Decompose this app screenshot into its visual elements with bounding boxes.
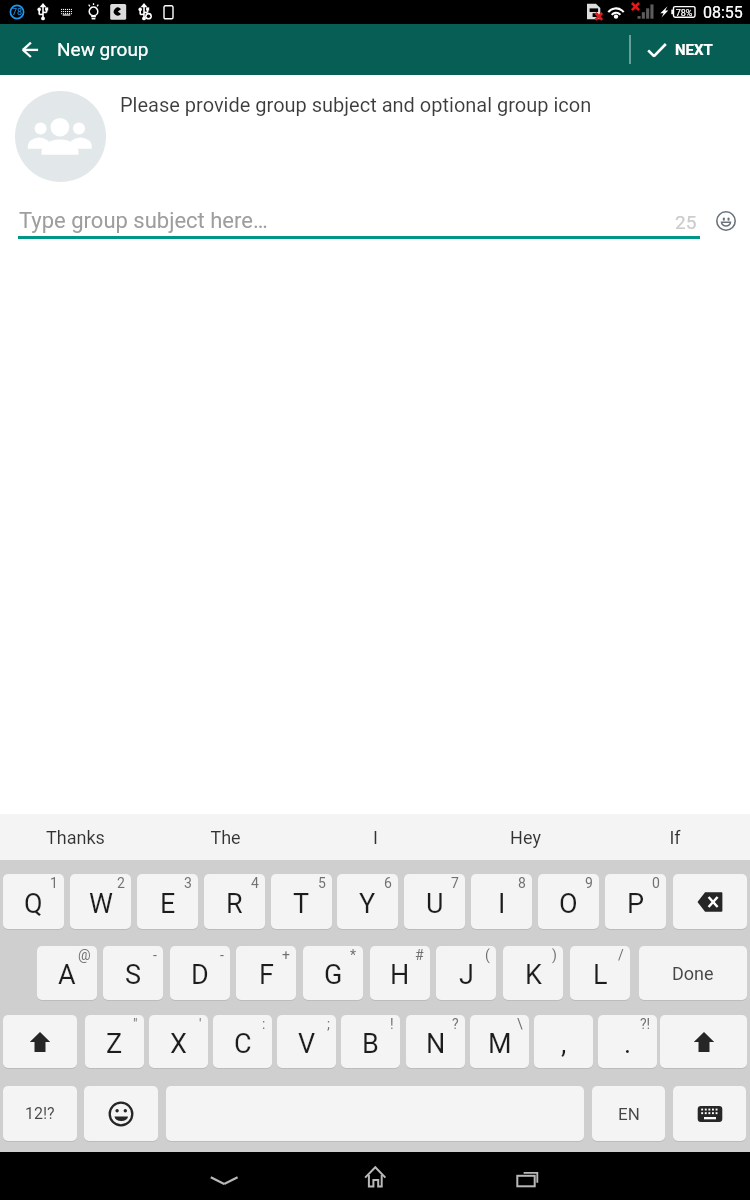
staticText: 6	[384, 875, 392, 891]
staticText: :	[262, 1016, 266, 1032]
staticText: A	[58, 959, 76, 991]
button[interactable]: C	[213, 1015, 272, 1068]
staticText: +	[282, 947, 290, 963]
staticText: N	[426, 1028, 446, 1060]
staticText: Type group subject here…	[19, 208, 268, 234]
staticText: L	[593, 959, 608, 991]
button[interactable]: X	[149, 1015, 208, 1068]
button[interactable]: ,	[534, 1015, 593, 1068]
button[interactable]: F	[236, 946, 296, 1000]
staticText: S	[125, 959, 142, 991]
staticText: P	[627, 888, 645, 920]
staticText: T	[293, 888, 310, 920]
staticText: *	[350, 947, 357, 963]
staticText: K	[525, 959, 542, 991]
staticText: F	[259, 959, 274, 991]
staticText: V	[298, 1028, 316, 1060]
staticText: Thanks	[46, 827, 105, 848]
staticText: 2	[117, 875, 125, 891]
button[interactable]: A	[37, 946, 97, 1000]
staticText: 25	[675, 211, 697, 233]
button[interactable]: G	[303, 946, 363, 1000]
staticText: '	[199, 1016, 202, 1032]
button[interactable]: T	[271, 874, 332, 929]
button[interactable]: EN	[592, 1086, 665, 1141]
button[interactable]: If	[600, 814, 750, 860]
staticText: .	[624, 1028, 632, 1060]
staticText: !	[390, 1016, 394, 1032]
button[interactable]: Z	[85, 1015, 144, 1068]
button[interactable]: Change keyboard	[673, 1086, 746, 1141]
button[interactable]: Add group icon	[15, 91, 106, 182]
staticText: 5	[318, 875, 326, 891]
button[interactable]: Shift	[3, 1015, 77, 1068]
staticText: J	[459, 959, 474, 991]
staticText: E	[160, 888, 176, 920]
button[interactable]: Done	[639, 946, 747, 1000]
staticText: #	[415, 947, 424, 963]
button[interactable]: P	[605, 874, 666, 929]
staticText: Y	[359, 888, 376, 920]
staticText: 12!?	[25, 1104, 55, 1123]
button[interactable]: N	[406, 1015, 465, 1068]
staticText: Q	[24, 888, 43, 920]
staticText: /	[618, 947, 624, 963]
staticText: U	[426, 888, 444, 920]
staticText: Z	[106, 1028, 123, 1060]
button[interactable]: Recent apps	[502, 1152, 552, 1200]
staticText: B	[362, 1028, 379, 1060]
staticText: If	[669, 827, 681, 848]
staticText: @	[78, 947, 91, 963]
staticText: X	[170, 1028, 187, 1060]
button[interactable]: H	[370, 946, 430, 1000]
button[interactable]: S	[103, 946, 163, 1000]
button[interactable]: The	[150, 814, 300, 860]
staticText: EN	[618, 1104, 640, 1124]
staticText: New group	[57, 38, 149, 60]
staticText: Done	[672, 963, 714, 984]
staticText: ;	[327, 1016, 330, 1032]
button[interactable]: B	[341, 1015, 400, 1068]
button[interactable]: NEXT	[640, 24, 750, 75]
button[interactable]: Backspace	[673, 874, 747, 929]
button[interactable]: E	[137, 874, 198, 929]
button[interactable]: Thanks	[0, 814, 150, 860]
button[interactable]: R	[204, 874, 265, 929]
button[interactable]: Q	[3, 874, 64, 929]
button[interactable]: Emoji	[84, 1086, 158, 1141]
staticText: -	[153, 947, 157, 963]
staticText: The	[210, 827, 241, 848]
staticText: Hey	[510, 827, 541, 848]
button[interactable]: Hide keyboard	[194, 1152, 254, 1200]
button[interactable]: J	[436, 946, 496, 1000]
button[interactable]: W	[70, 874, 131, 929]
button[interactable]: K	[503, 946, 563, 1000]
button[interactable]: Emoji	[706, 201, 746, 241]
staticText: )	[552, 947, 557, 963]
button[interactable]: Y	[337, 874, 398, 929]
button[interactable]: L	[570, 946, 630, 1000]
button[interactable]: O	[538, 874, 599, 929]
button[interactable]: V	[277, 1015, 336, 1068]
button[interactable]: I	[471, 874, 532, 929]
staticText: 1	[50, 875, 58, 891]
button[interactable]: D	[170, 946, 230, 1000]
button[interactable]: 12!?	[3, 1086, 77, 1141]
staticText: 08:55	[703, 3, 743, 22]
button[interactable]: U	[404, 874, 465, 929]
staticText: M	[488, 1028, 512, 1060]
button[interactable]: Shift	[660, 1015, 747, 1068]
button[interactable]: Back	[6, 24, 54, 75]
staticText: 8	[518, 875, 526, 891]
staticText: -	[220, 947, 224, 963]
button[interactable]: .	[598, 1015, 657, 1068]
staticText: Please provide group subject and optiona…	[120, 93, 592, 116]
staticText: "	[133, 1016, 138, 1032]
button[interactable]: Home	[350, 1152, 400, 1200]
button[interactable]: Hey	[450, 814, 600, 860]
staticText: W	[89, 888, 113, 920]
button[interactable]: I	[300, 814, 450, 860]
button[interactable]: M	[470, 1015, 529, 1068]
staticText: NEXT	[675, 41, 713, 59]
